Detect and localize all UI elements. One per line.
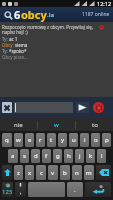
staticText: x [28,169,32,177]
button[interactable]: a [8,149,18,163]
staticText: 1187 online [82,11,110,18]
button[interactable]: t [47,133,56,147]
button[interactable]: c [36,165,46,180]
button[interactable] [28,182,65,197]
button[interactable]: w [38,118,75,131]
button[interactable]: o [91,133,100,147]
button[interactable]: Comma [15,182,26,197]
button[interactable]: b [60,165,70,180]
staticText: f [45,152,48,160]
staticText: 123 [2,188,13,196]
staticText: u [72,136,76,144]
button[interactable]: u [69,133,78,147]
button[interactable]: j [75,149,84,163]
button[interactable]: r [36,133,45,147]
button[interactable]: v [48,165,58,180]
staticText: .la [47,11,55,19]
staticText: g [56,152,60,160]
button[interactable]: g [53,149,62,163]
staticText: e [28,136,32,144]
button[interactable]: f [42,149,51,163]
button[interactable]: Clear [2,102,12,113]
button[interactable] [14,102,73,113]
staticText: 6 [14,7,21,22]
button[interactable]: p [102,133,111,147]
staticText: j [79,152,81,160]
button[interactable]: . [67,182,83,197]
button[interactable]: q [2,133,12,147]
button[interactable]: n [72,165,82,180]
staticText: q [5,136,9,144]
button[interactable]: x [25,165,34,180]
staticText: c [40,169,43,177]
staticText: s [23,152,26,160]
button[interactable]: l [97,149,106,163]
button[interactable]: d [31,149,40,163]
staticText: n [75,169,79,177]
staticText: p [105,136,109,144]
button[interactable]: i [80,133,89,147]
button[interactable]: to [76,118,113,131]
staticText: r [39,136,42,144]
button[interactable]: Search [2,9,14,21]
staticText: nie [14,121,23,129]
staticText: v [51,169,55,177]
staticText: to [92,121,98,129]
button[interactable]: Enter [85,182,111,197]
button[interactable]: m [84,165,94,180]
button[interactable]: Shift [2,165,12,180]
staticText: l [101,152,103,160]
button[interactable]: Send [76,102,89,113]
staticText: y [61,136,65,144]
staticText: Ty: [2,36,9,42]
staticText: 12:12 [97,0,112,7]
staticText: w [16,136,21,144]
button[interactable]: w [14,133,23,147]
staticText: i [84,136,86,144]
staticText: Obcy: [2,42,15,48]
button[interactable]: Disconnect [93,102,104,113]
button[interactable]: Symbols [2,182,13,197]
staticText: Obcy pisze... [2,54,28,60]
staticText: h [67,152,71,160]
button[interactable]: z [14,165,23,180]
button[interactable]: k [86,149,95,163]
button[interactable]: nie [0,118,37,131]
staticText: t [50,136,53,144]
staticText: siema [15,42,28,48]
staticText: *spoko* [9,48,27,54]
staticText: obcy [21,7,47,22]
button[interactable]: y [58,133,67,147]
staticText: Rozpoczęto rozmowę z obcym. Przywitaj si… [2,24,93,36]
staticText: . [74,186,76,194]
staticText: k [89,152,93,160]
staticText: w [54,121,59,129]
staticText: Ty: [2,48,9,54]
staticText: , [20,189,22,196]
staticText: d [34,152,38,160]
staticText: b [63,169,67,177]
staticText: o [94,136,98,144]
button[interactable]: e [25,133,34,147]
button[interactable]: Backspace [96,165,111,180]
staticText: ac 1 [9,36,18,42]
button[interactable]: h [64,149,73,163]
staticText: z [17,169,20,177]
staticText: a [11,152,15,160]
staticText: m [86,169,92,177]
button[interactable]: s [20,149,29,163]
